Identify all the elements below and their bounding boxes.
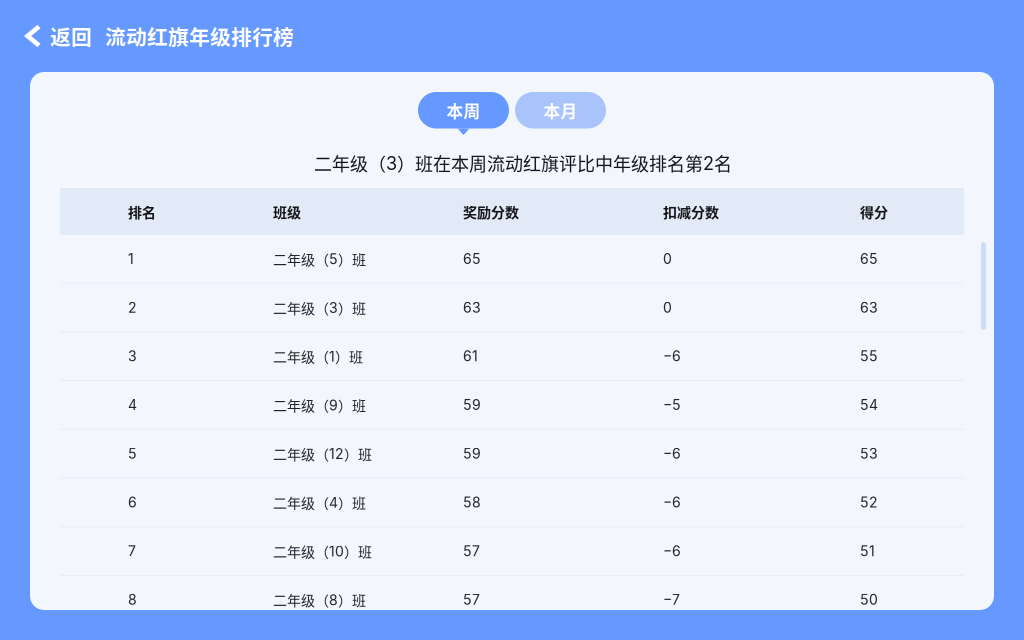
staticText: −6	[663, 543, 681, 559]
staticText: 53	[860, 445, 878, 462]
staticText: −6	[663, 445, 681, 462]
staticText: 57	[463, 543, 480, 559]
staticText: 59	[463, 396, 481, 413]
staticText: 排名	[128, 201, 156, 222]
staticText: 二年级（1）班	[273, 346, 363, 366]
staticText: 0	[663, 250, 672, 267]
staticText: 1	[128, 250, 134, 267]
staticText: 2	[128, 299, 137, 316]
staticText: 二年级（3）班在本周流动红旗评比中年级排名第2名	[314, 150, 732, 176]
staticText: 65	[463, 250, 481, 267]
staticText: 54	[860, 396, 878, 413]
staticText: 二年级（3）班	[273, 297, 366, 318]
staticText: 二年级（9）班	[273, 395, 366, 415]
staticText: 本周	[446, 98, 480, 122]
staticText: 二年级（10）班	[273, 541, 372, 561]
staticText: 63	[860, 299, 878, 316]
staticText: 3	[128, 348, 137, 365]
staticText: 51	[860, 543, 875, 559]
staticText: 5	[128, 445, 137, 462]
button[interactable]: 流动红旗年级排行榜	[96, 10, 294, 62]
staticText: 7	[128, 543, 136, 559]
staticText: 59	[463, 445, 481, 462]
button[interactable]: 本月	[515, 92, 606, 135]
staticText: 返回	[50, 21, 92, 51]
staticText: 二年级（8）班	[273, 590, 366, 610]
staticText: 50	[860, 591, 878, 608]
button[interactable]: 返回	[0, 10, 96, 62]
staticText: 得分	[860, 201, 888, 222]
staticText: −5	[663, 396, 681, 413]
staticText: 二年级（5）班	[273, 249, 366, 269]
staticText: 8	[128, 591, 137, 608]
staticText: 65	[860, 250, 878, 267]
staticText: 二年级（4）班	[273, 492, 366, 512]
staticText: 奖励分数	[463, 201, 519, 222]
staticText: 55	[860, 348, 878, 365]
staticText: 58	[463, 494, 481, 511]
staticText: 0	[663, 299, 672, 316]
staticText: 4	[128, 396, 137, 413]
staticText: 63	[463, 299, 481, 316]
staticText: 扣减分数	[663, 201, 719, 222]
staticText: 6	[128, 494, 137, 511]
staticText: 52	[860, 494, 878, 511]
staticText: 本月	[543, 98, 577, 122]
staticText: −6	[663, 348, 681, 365]
staticText: −7	[663, 591, 680, 608]
staticText: 流动红旗年级排行榜	[105, 21, 294, 51]
staticText: 57	[463, 591, 480, 608]
staticText: 班级	[273, 201, 301, 222]
staticText: 二年级（12）班	[273, 443, 372, 464]
staticText: 61	[463, 348, 478, 365]
button[interactable]: 本周	[418, 92, 509, 135]
staticText: −6	[663, 494, 681, 511]
